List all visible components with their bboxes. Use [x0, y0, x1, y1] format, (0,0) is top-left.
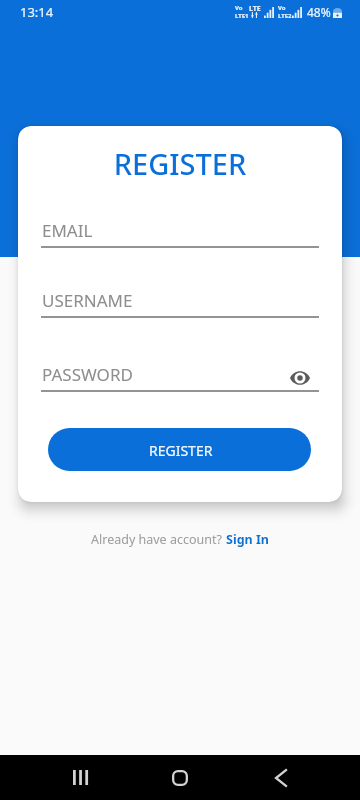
staticText: 13:14	[20, 3, 54, 21]
button[interactable]: Show password	[285, 365, 314, 391]
staticText: EMAIL	[42, 219, 93, 242]
button[interactable]: USERNAME	[41, 287, 319, 319]
button[interactable]: EMAIL	[41, 217, 319, 249]
staticText: REGISTER	[18, 144, 342, 183]
staticText: LTE1	[235, 12, 249, 20]
staticText: Vo	[235, 4, 243, 12]
button[interactable]: Sign In	[226, 531, 269, 548]
staticText: USERNAME	[42, 289, 133, 312]
staticText: 48%	[307, 4, 331, 20]
button[interactable]: Recents	[56, 755, 104, 800]
button[interactable]: Back	[257, 755, 305, 800]
staticText: Sign In	[226, 531, 269, 548]
staticText: LTE	[249, 4, 261, 14]
button[interactable]: REGISTER	[48, 428, 311, 471]
staticText: LTE2	[278, 12, 292, 20]
staticText: Already have account?	[91, 531, 226, 548]
button[interactable]: Home	[156, 755, 204, 800]
staticText: PASSWORD	[42, 363, 133, 386]
staticText: Vo	[278, 4, 286, 12]
staticText: REGISTER	[149, 441, 213, 460]
button[interactable]: PASSWORD	[41, 361, 319, 393]
